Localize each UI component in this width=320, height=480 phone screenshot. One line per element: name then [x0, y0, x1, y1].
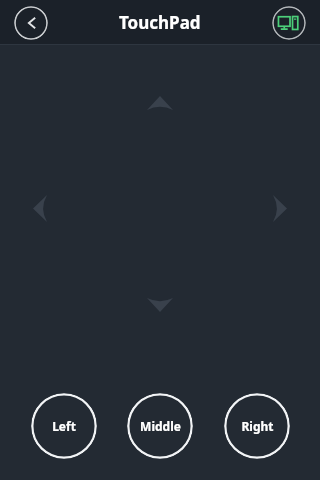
- staticText: TouchPad: [119, 11, 201, 34]
- button[interactable]: Move down: [128, 285, 192, 325]
- staticText: Right: [241, 418, 274, 434]
- button[interactable]: Middle: [127, 393, 193, 459]
- button[interactable]: Move left: [20, 178, 60, 238]
- button[interactable]: Connected device: [272, 6, 306, 40]
- button[interactable]: Back: [14, 6, 48, 40]
- button[interactable]: Right: [224, 393, 290, 459]
- staticText: Middle: [140, 418, 181, 434]
- button[interactable]: Move up: [128, 83, 192, 123]
- staticText: Left: [52, 418, 76, 434]
- button[interactable]: Move right: [260, 178, 300, 238]
- button[interactable]: Left: [31, 393, 97, 459]
